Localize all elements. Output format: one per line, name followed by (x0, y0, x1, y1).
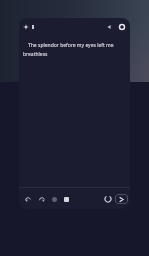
button[interactable]: Keyboard (60, 193, 72, 205)
button[interactable]: AI assist (19, 19, 38, 34)
button[interactable]: Read aloud (115, 20, 128, 33)
button[interactable]: Previous (103, 21, 115, 33)
button[interactable]: Redo (35, 192, 48, 205)
button[interactable]: Tone (48, 193, 60, 205)
button[interactable]: Undo (21, 192, 34, 205)
button[interactable]: Send (115, 194, 128, 204)
staticText: The splendor before my eyes left me brea… (23, 42, 121, 57)
button[interactable]: Regenerate (101, 192, 114, 205)
